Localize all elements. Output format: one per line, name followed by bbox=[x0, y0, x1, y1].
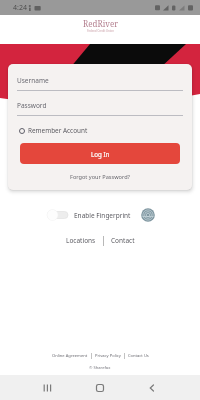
staticText: 4:24 bbox=[13, 3, 27, 13]
staticText: © Sharefax bbox=[89, 365, 111, 371]
staticText: Log In bbox=[91, 150, 110, 158]
button[interactable]: Enable Fingerprint toggle bbox=[45, 208, 69, 222]
button[interactable]: Log In bbox=[20, 143, 180, 164]
staticText: Remember Account bbox=[28, 126, 88, 135]
button[interactable]: Online Agreement bbox=[49, 353, 91, 359]
button[interactable]: Home bbox=[89, 377, 111, 399]
button[interactable]: Forgot your Password? bbox=[64, 171, 137, 183]
button[interactable]: Remember Account bbox=[17, 124, 90, 137]
button[interactable]: Recent apps bbox=[36, 377, 58, 399]
button[interactable]: Fingerprint login bbox=[141, 208, 155, 222]
button[interactable]: Back bbox=[141, 377, 163, 399]
staticText: RedRiver bbox=[83, 18, 118, 29]
staticText: Enable Fingerprint bbox=[74, 211, 131, 220]
button[interactable]: Contact bbox=[104, 233, 142, 248]
button[interactable]: Contact Us bbox=[125, 353, 152, 359]
button[interactable]: Locations bbox=[59, 233, 103, 248]
button[interactable]: Username bbox=[17, 76, 183, 91]
staticText: Password bbox=[17, 101, 47, 110]
staticText: Federal Credit Union bbox=[87, 29, 114, 33]
button[interactable]: Password bbox=[17, 101, 183, 116]
staticText: Username bbox=[17, 76, 49, 85]
button[interactable]: Privacy Policy bbox=[92, 353, 124, 359]
